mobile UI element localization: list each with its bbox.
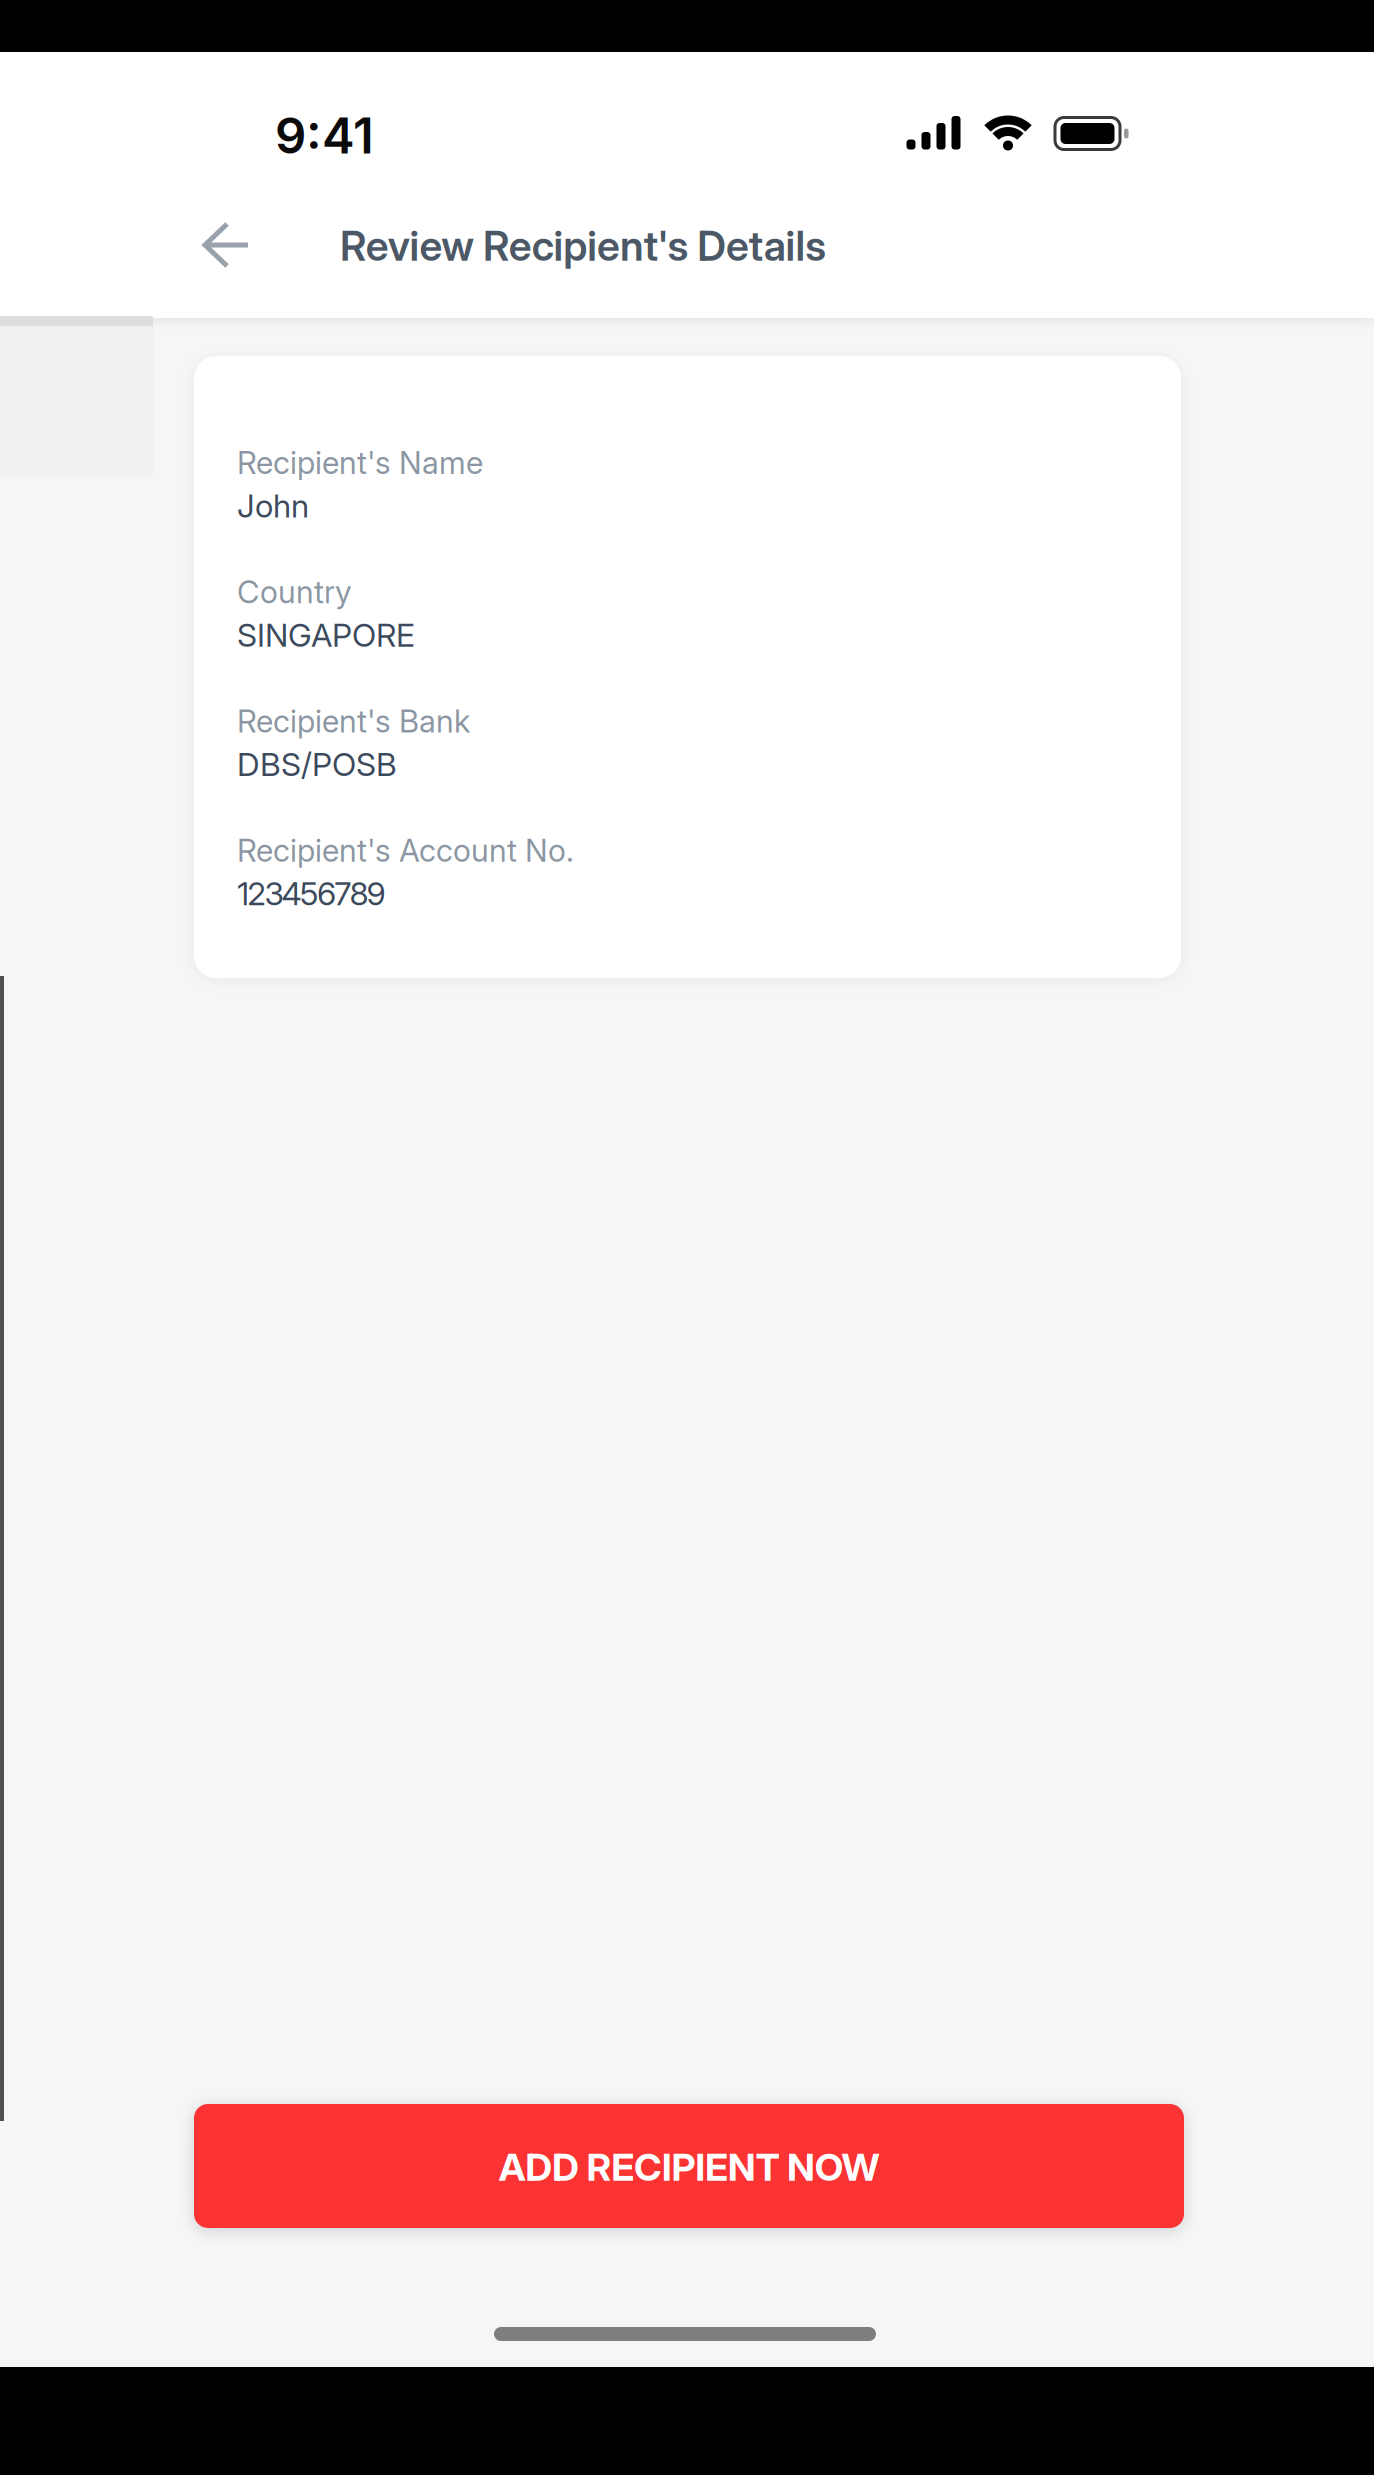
staticText: Review Recipient's Details	[340, 221, 826, 271]
staticText: John	[237, 486, 309, 525]
staticText: DBS/POSB	[237, 745, 397, 784]
staticText: Recipient's Name	[237, 444, 483, 481]
button[interactable]: ADD RECIPIENT NOW	[194, 2104, 1184, 2228]
staticText: Recipient's Bank	[237, 702, 470, 740]
staticText: 123456789	[237, 874, 386, 913]
staticText: SINGAPORE	[237, 616, 415, 654]
button[interactable]: Back	[188, 205, 268, 285]
staticText: Recipient's Account No.	[237, 832, 574, 869]
staticText: ADD RECIPIENT NOW	[498, 2144, 879, 2190]
staticText: Country	[237, 573, 352, 611]
staticText: 9:41	[275, 106, 374, 165]
